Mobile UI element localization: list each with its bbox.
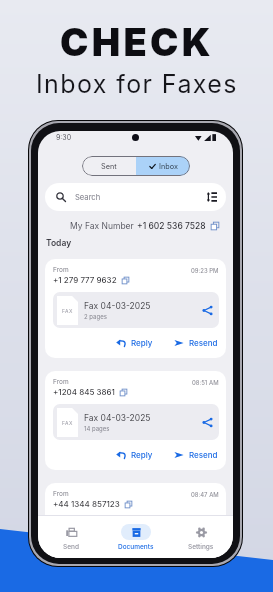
staticText: Send	[63, 543, 79, 551]
button[interactable]: Copy fax number	[211, 222, 219, 230]
staticText: 09:23 PM	[191, 267, 219, 274]
staticText: Today	[46, 238, 72, 248]
staticText: +1 602 536 7528	[137, 221, 206, 231]
button[interactable]: Copy number	[120, 389, 127, 396]
staticText: 14 pages	[84, 425, 110, 432]
staticText: +1 279 777 9632	[53, 275, 117, 285]
button[interactable]: Search	[45, 183, 226, 211]
staticText: 08:47 AM	[191, 491, 219, 498]
staticText: Inbox for Faxes	[36, 69, 238, 99]
button[interactable]: Share	[199, 414, 215, 430]
button[interactable]: Reply	[115, 336, 154, 350]
button[interactable]: Resend	[173, 448, 219, 462]
staticText: Inbox	[159, 162, 178, 171]
staticText: CHECK	[60, 19, 214, 65]
button[interactable]: From	[45, 259, 226, 358]
staticText: Reply	[131, 338, 153, 348]
button[interactable]: FAX	[53, 292, 219, 328]
staticText: 08:51 AM	[192, 379, 219, 386]
staticText: From	[53, 490, 69, 498]
button[interactable]: Share	[199, 302, 215, 318]
button[interactable]: Reply	[115, 448, 154, 462]
staticText: Documents	[118, 543, 154, 551]
staticText: 9:30	[56, 133, 72, 141]
staticText: Resend	[189, 450, 218, 460]
button[interactable]: From	[45, 483, 226, 558]
staticText: Sent	[101, 162, 117, 171]
button[interactable]: Sort	[201, 186, 223, 208]
button[interactable]: Copy number	[125, 501, 132, 508]
staticText: Settings	[188, 543, 214, 551]
staticText: FAX	[62, 308, 73, 314]
button[interactable]: From	[45, 371, 226, 470]
button[interactable]: Sent	[82, 156, 136, 176]
staticText: +44 1344 857123	[53, 499, 120, 509]
staticText: Search	[75, 193, 101, 202]
staticText: 2 pages	[84, 313, 107, 320]
staticText: Fax 04-03-2025	[84, 413, 151, 423]
staticText: +1204 845 3861	[53, 387, 115, 397]
button[interactable]: Settings	[168, 516, 233, 558]
staticText: My Fax Number	[70, 221, 137, 231]
staticText: FAX	[62, 420, 73, 426]
staticText: Resend	[189, 338, 218, 348]
staticText: From	[53, 266, 69, 274]
staticText: Reply	[131, 450, 153, 460]
button[interactable]: FAX	[53, 404, 219, 440]
button[interactable]: Resend	[173, 336, 219, 350]
staticText: From	[53, 378, 69, 386]
button[interactable]: Documents	[103, 516, 168, 558]
button[interactable]: Send	[38, 516, 103, 558]
staticText: Fax 04-03-2025	[84, 301, 151, 311]
button[interactable]: Inbox	[136, 156, 190, 176]
button[interactable]: Copy number	[122, 277, 129, 284]
